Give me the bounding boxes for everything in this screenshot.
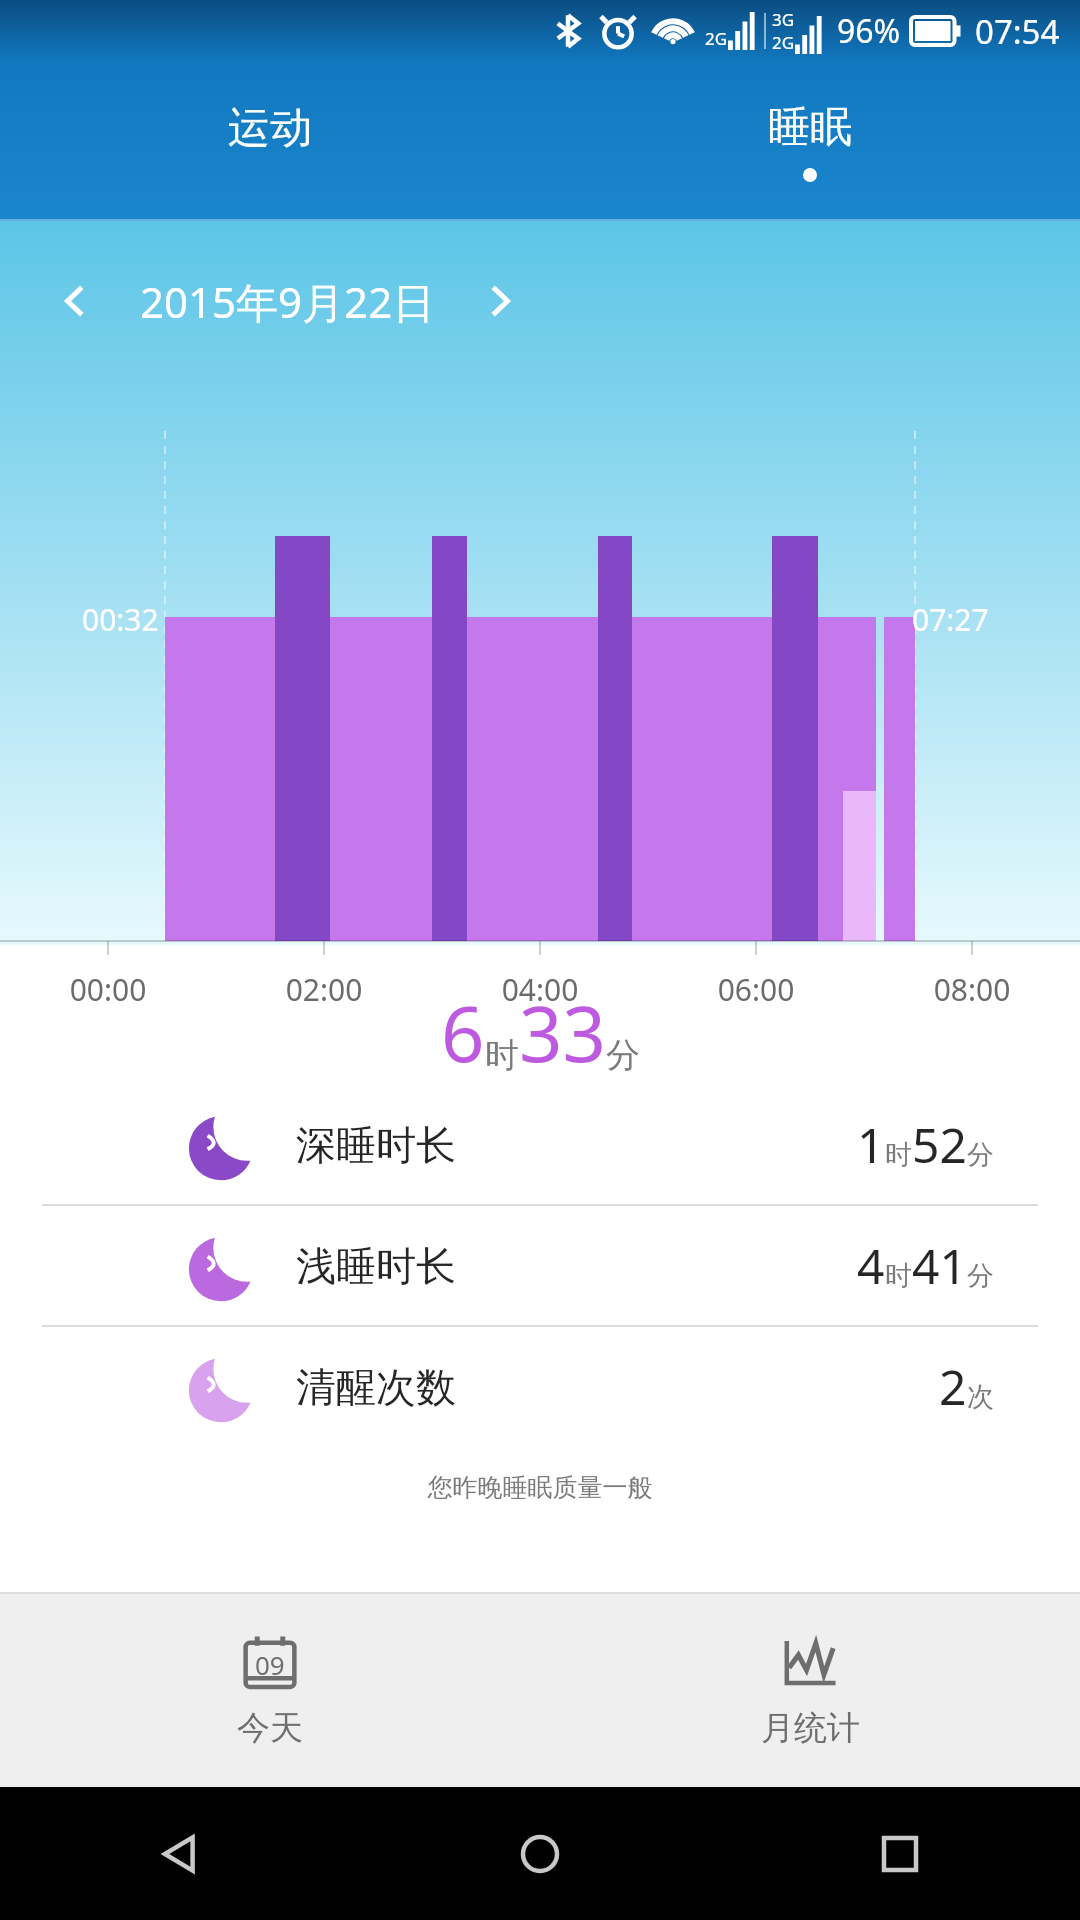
other: 清醒次数 <box>186 1351 258 1423</box>
staticText: 41 <box>912 1233 967 1298</box>
button[interactable]: 睡眠 <box>540 62 1080 221</box>
staticText: 04:00 <box>470 969 610 1010</box>
staticText: 时 <box>485 1034 519 1077</box>
staticText: 浅睡时长 <box>296 1241 456 1291</box>
staticText: 今天 <box>237 1707 303 1749</box>
staticText: 33 <box>519 981 606 1085</box>
button[interactable]: 09 <box>0 1594 540 1787</box>
staticText: 00:00 <box>38 969 178 1010</box>
staticText: 分 <box>967 1259 994 1293</box>
staticText: 52 <box>912 1112 967 1177</box>
staticText: 次 <box>967 1380 994 1414</box>
button[interactable]: 浅睡时长 <box>0 1206 1080 1325</box>
staticText: 月统计 <box>761 1707 860 1749</box>
other: 浅睡时长 <box>186 1230 258 1302</box>
button[interactable]: 清醒次数 <box>0 1327 1080 1446</box>
staticText: 时 <box>885 1138 912 1172</box>
staticText: 09 <box>255 1647 285 1682</box>
staticText: 2G <box>772 31 795 54</box>
staticText: 4 <box>857 1233 885 1298</box>
staticText: 07:27 <box>912 599 989 640</box>
other: 深睡时长 <box>186 1109 258 1181</box>
button[interactable]: Next day <box>469 270 531 332</box>
staticText: 2015年9月22日 <box>140 273 435 330</box>
staticText: 07:54 <box>975 9 1060 54</box>
button[interactable]: Home <box>505 1819 575 1889</box>
staticText: 96% <box>837 9 901 53</box>
staticText: 3G <box>772 8 795 31</box>
button[interactable]: 深睡时长 <box>0 1085 1080 1204</box>
staticText: 睡眠 <box>768 101 852 154</box>
button[interactable]: 月统计 <box>540 1594 1080 1787</box>
staticText: 6 <box>441 981 485 1085</box>
staticText: 1 <box>857 1112 885 1177</box>
staticText: 02:00 <box>254 969 394 1010</box>
staticText: 时 <box>885 1259 912 1293</box>
staticText: 您昨晚睡眠质量一般 <box>0 1472 1080 1503</box>
staticText: 2 <box>939 1354 967 1419</box>
button[interactable]: 运动 <box>0 62 540 221</box>
button[interactable]: Recents <box>865 1819 935 1889</box>
staticText: 深睡时长 <box>296 1120 456 1170</box>
button[interactable]: Back <box>145 1819 215 1889</box>
staticText: 08:00 <box>902 969 1042 1010</box>
staticText: 清醒次数 <box>296 1362 456 1412</box>
staticText: 06:00 <box>686 969 826 1010</box>
staticText: 00:32 <box>82 599 159 640</box>
button[interactable]: Previous day <box>44 270 106 332</box>
staticText: 分 <box>606 1034 640 1077</box>
staticText: 运动 <box>228 102 312 155</box>
staticText: 2G <box>705 27 728 50</box>
staticText: 分 <box>967 1138 994 1172</box>
